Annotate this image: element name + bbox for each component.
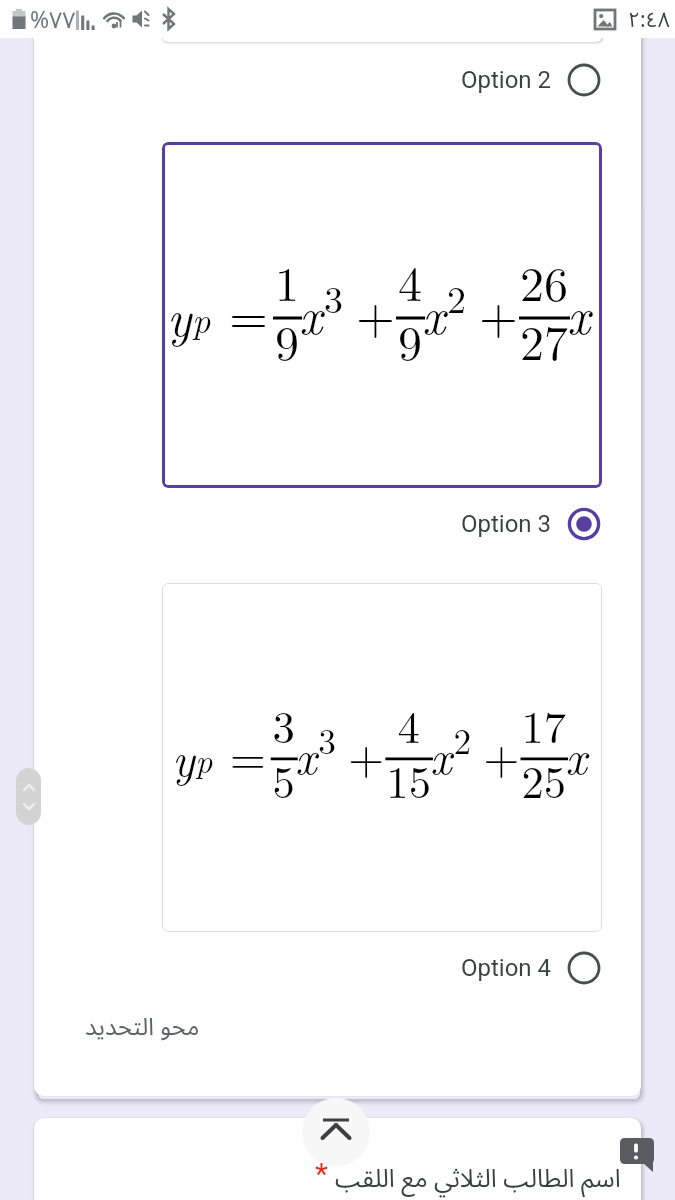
button[interactable]: y <box>162 142 602 488</box>
staticText: = <box>229 278 265 349</box>
staticText: x <box>299 278 323 349</box>
staticText: 3 <box>318 714 337 764</box>
staticText: 2 <box>447 270 467 324</box>
staticText: x <box>422 278 446 349</box>
staticText: 15 <box>386 748 432 811</box>
staticText: p <box>192 292 211 343</box>
staticText: + <box>479 278 511 349</box>
staticText: 27 <box>520 306 569 374</box>
staticText: %٧٧ <box>30 0 76 34</box>
staticText: 4 <box>398 247 423 315</box>
staticText: Option 2 <box>461 66 552 94</box>
staticText: 26 <box>520 247 569 315</box>
button[interactable]: Feedback <box>618 1134 658 1174</box>
staticText: + <box>356 278 388 349</box>
staticText: Option 4 <box>461 954 552 982</box>
staticText: 3 <box>324 270 344 324</box>
staticText: 4 <box>397 693 421 756</box>
staticText: 25 <box>521 748 567 811</box>
staticText: ٢:٤٨ <box>628 0 670 36</box>
button[interactable]: y <box>162 583 602 932</box>
staticText: p <box>195 735 213 782</box>
button[interactable]: Option 2 <box>400 64 601 98</box>
staticText: + <box>483 721 513 788</box>
staticText: x <box>567 278 591 349</box>
staticText: 2 <box>453 714 472 764</box>
staticText: = <box>230 721 263 788</box>
staticText: + <box>348 721 378 788</box>
staticText: x <box>295 721 317 788</box>
staticText: y <box>167 280 192 351</box>
staticText: 1 <box>275 247 300 315</box>
button[interactable]: محو التحديد <box>79 996 206 1059</box>
button[interactable]: Option 4 <box>400 952 601 986</box>
staticText: 5 <box>273 748 296 811</box>
button[interactable]: Scroll <box>16 768 41 825</box>
staticText: 3 <box>273 693 296 756</box>
staticText: اسم الطالب الثلاثي مع اللقب <box>335 1153 621 1200</box>
staticText: 9 <box>398 306 423 374</box>
staticText: 9 <box>275 306 300 374</box>
staticText: * <box>315 1156 328 1191</box>
staticText: 17 <box>521 693 567 756</box>
button[interactable]: Collapse <box>302 1098 370 1166</box>
button[interactable]: Option 3 <box>400 508 601 542</box>
staticText: Option 3 <box>461 510 552 538</box>
staticText: x <box>430 721 452 788</box>
staticText: محو التحديد <box>85 1002 200 1053</box>
staticText: x <box>565 721 579 788</box>
staticText: y <box>172 723 195 790</box>
